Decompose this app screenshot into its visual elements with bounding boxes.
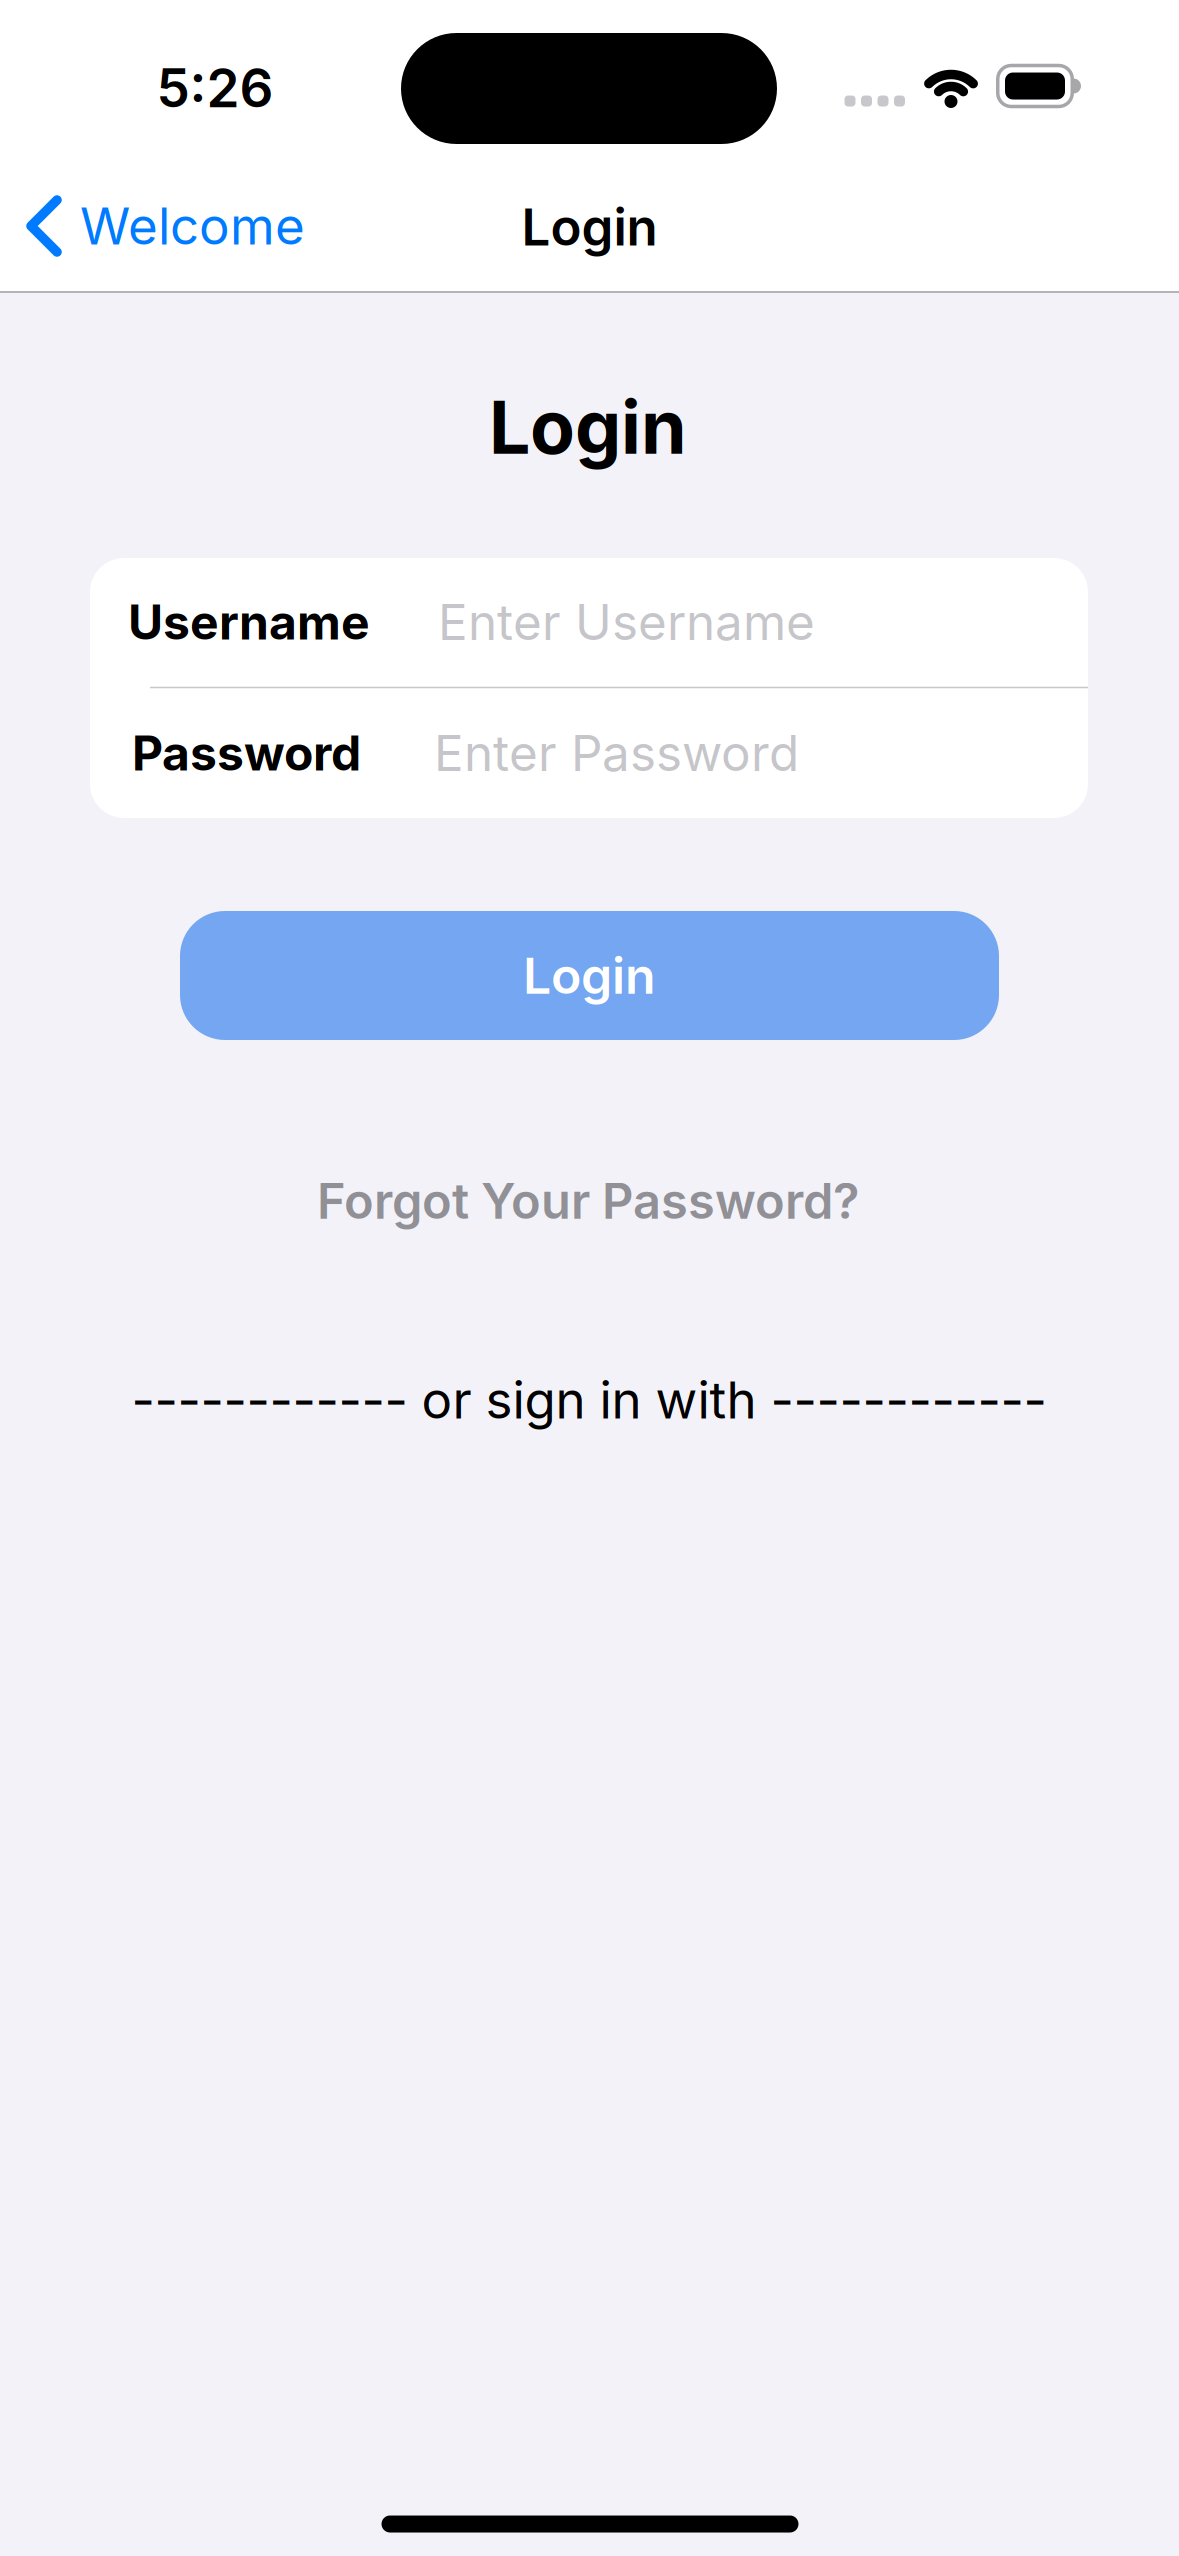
staticText: Username — [128, 593, 370, 651]
staticText: Login — [489, 383, 687, 471]
button[interactable]: Forgot Your Password? — [317, 1171, 859, 1230]
staticText: 5:26 — [156, 56, 273, 120]
button[interactable]: Welcome — [27, 195, 305, 257]
staticText: Enter Password — [434, 723, 799, 783]
staticText: Enter Username — [438, 592, 815, 652]
staticText: Login — [521, 196, 657, 258]
button[interactable]: Login — [180, 911, 999, 1040]
staticText: Password — [132, 724, 361, 782]
button[interactable]: Password — [132, 689, 1085, 817]
staticText: Forgot Your Password? — [317, 1171, 859, 1230]
staticText: ------------ or sign in with -----------… — [131, 1369, 1046, 1431]
button[interactable]: Username — [128, 558, 1085, 686]
staticText: Login — [523, 945, 656, 1006]
staticText: Welcome — [80, 195, 305, 257]
